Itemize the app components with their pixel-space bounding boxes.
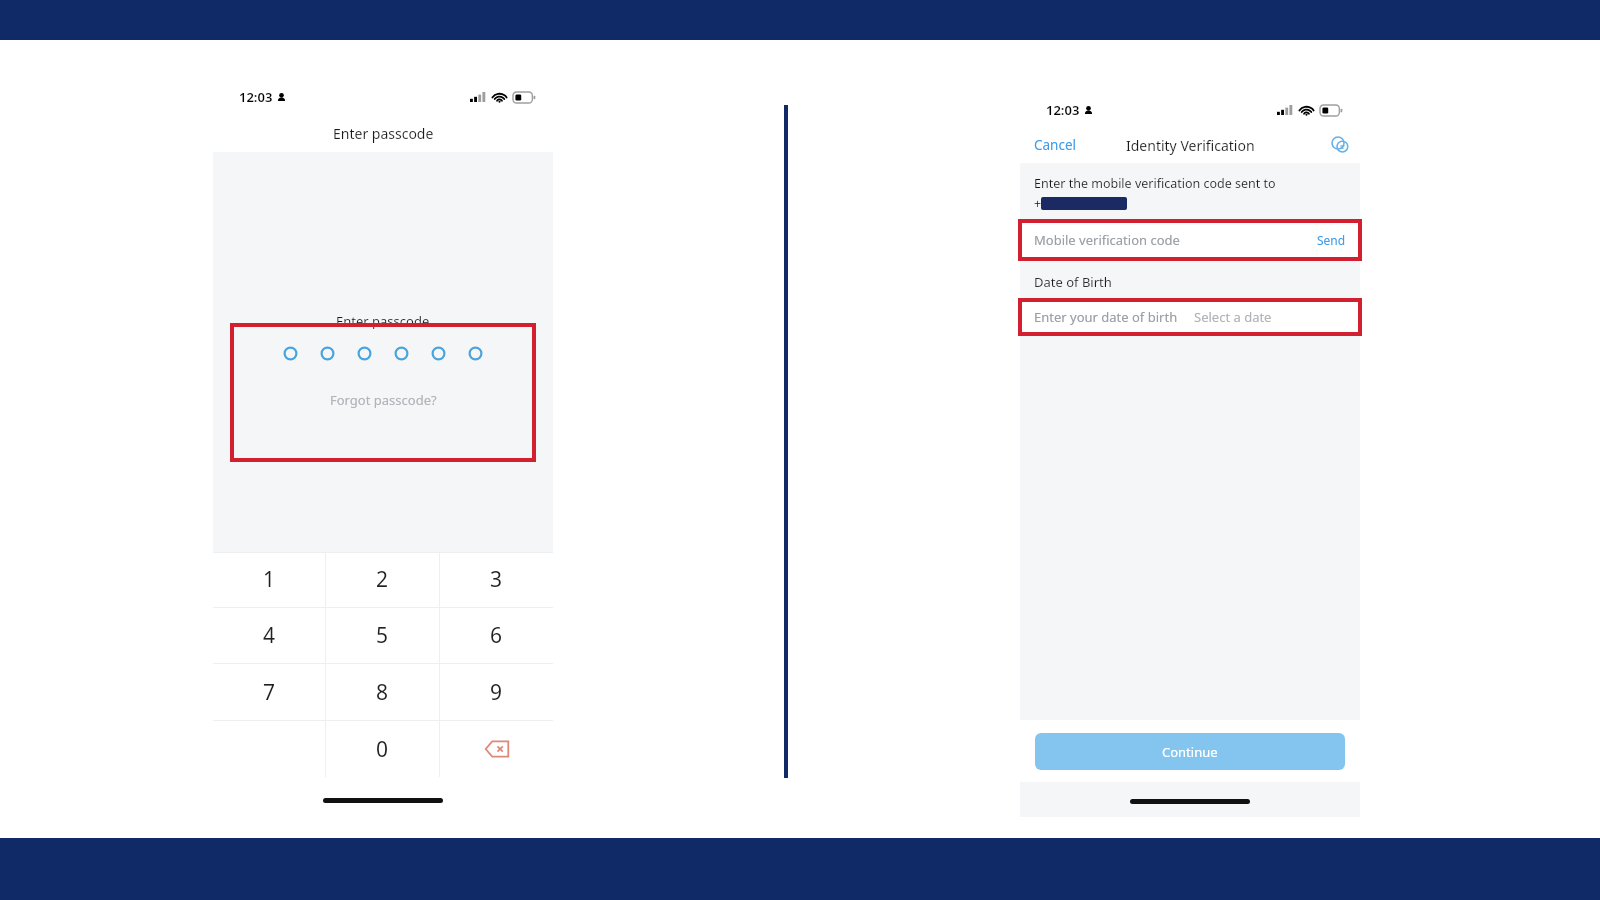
staticText: 0 <box>376 735 389 764</box>
staticText: Select a date <box>1194 308 1272 326</box>
button[interactable]: 5 <box>326 608 439 663</box>
staticText: Continue <box>1162 743 1218 761</box>
staticText: 6 <box>490 621 503 650</box>
button[interactable]: Enter your date of birth <box>1020 300 1360 334</box>
button[interactable]: 8 <box>326 664 439 720</box>
button[interactable]: Cancel <box>1020 130 1091 160</box>
staticText: 12:03 <box>239 88 273 106</box>
staticText: Date of Birth <box>1034 273 1112 291</box>
staticText: Enter passcode <box>336 312 430 330</box>
staticText: Forgot passcode? <box>330 391 437 409</box>
other: Delete <box>485 740 509 758</box>
staticText: Mobile verification code <box>1034 231 1180 249</box>
button[interactable]: Chat support <box>1320 135 1360 155</box>
button[interactable]: 6 <box>440 608 553 663</box>
staticText: 7 <box>263 678 276 707</box>
staticText: Send <box>1317 232 1346 248</box>
staticText: 2 <box>376 565 389 594</box>
button[interactable]: 3 <box>440 552 553 607</box>
staticText: 3 <box>490 565 503 594</box>
button[interactable]: 1 <box>213 552 325 607</box>
button[interactable]: 0 <box>326 721 439 777</box>
staticText: 12:03 <box>1046 101 1080 119</box>
staticText: 9 <box>490 678 503 707</box>
button[interactable]: Delete <box>440 721 553 777</box>
button[interactable]: 7 <box>213 664 325 720</box>
staticText: Identity Verification <box>1126 136 1255 155</box>
staticText: Cancel <box>1034 136 1077 154</box>
button[interactable]: 4 <box>213 608 325 663</box>
staticText: 5 <box>376 621 389 650</box>
staticText: + <box>1034 195 1042 212</box>
button[interactable]: 9 <box>440 664 553 720</box>
button[interactable]: 2 <box>326 552 439 607</box>
staticText: Enter the mobile verification code sent … <box>1034 175 1276 192</box>
staticText: Enter passcode <box>333 124 434 143</box>
staticText: 8 <box>376 678 389 707</box>
button[interactable]: Continue <box>1035 733 1345 770</box>
button[interactable]: Mobile verification code <box>1020 221 1360 259</box>
staticText: Enter your date of birth <box>1034 308 1178 326</box>
button[interactable]: Forgot passcode? <box>322 387 445 413</box>
staticText: 4 <box>263 621 276 650</box>
staticText: 1 <box>263 565 276 594</box>
button[interactable]: Send <box>1317 232 1346 248</box>
